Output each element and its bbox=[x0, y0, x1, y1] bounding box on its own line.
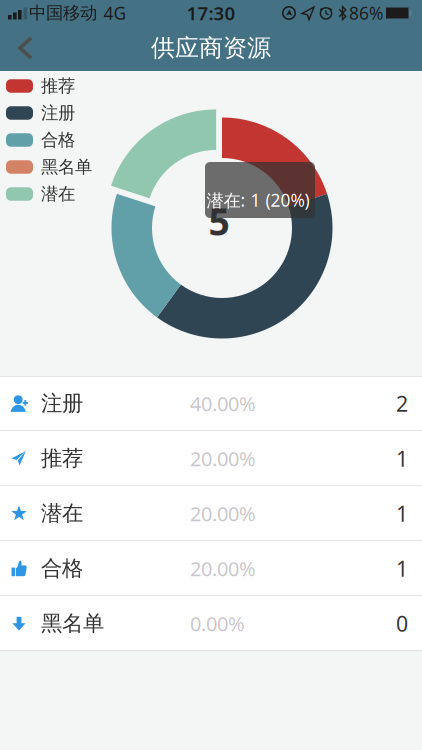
staticText: 20.00% bbox=[190, 555, 256, 582]
button[interactable]: 潜在 bbox=[0, 486, 422, 541]
staticText: 黑名单 bbox=[41, 156, 92, 178]
staticText: 供应商资源 bbox=[151, 33, 271, 63]
staticText: 合格 bbox=[41, 129, 75, 151]
staticText: 2 bbox=[396, 389, 408, 418]
staticText: 潜在: 1 (20%) bbox=[206, 188, 309, 211]
staticText: 黑名单 bbox=[41, 610, 104, 637]
button[interactable]: 注册 bbox=[0, 376, 422, 431]
staticText: 20.00% bbox=[190, 500, 256, 527]
button[interactable]: Back bbox=[0, 25, 52, 71]
button[interactable]: 合格 bbox=[0, 541, 422, 596]
staticText: 17:30 bbox=[186, 1, 235, 25]
staticText: 0.00% bbox=[190, 610, 245, 637]
staticText: 中国移动 bbox=[29, 2, 97, 24]
staticText: 40.00% bbox=[190, 390, 256, 417]
staticText: 合格 bbox=[41, 555, 83, 582]
staticText: 推荐 bbox=[41, 75, 75, 97]
staticText: 注册 bbox=[41, 102, 75, 124]
staticText: 潜在 bbox=[41, 183, 75, 205]
staticText: 1 bbox=[396, 554, 408, 583]
staticText: 潜在 bbox=[41, 500, 83, 527]
staticText: 5 bbox=[208, 196, 229, 246]
staticText: 1 bbox=[396, 499, 408, 528]
staticText: 4G bbox=[103, 1, 126, 24]
button[interactable]: 黑名单 bbox=[0, 596, 422, 651]
staticText: 1 bbox=[396, 444, 408, 473]
staticText: 86% bbox=[349, 1, 383, 24]
staticText: 推荐 bbox=[41, 445, 83, 472]
staticText: 注册 bbox=[41, 390, 83, 417]
button[interactable]: 推荐 bbox=[0, 431, 422, 486]
staticText: 0 bbox=[396, 609, 408, 638]
staticText: 20.00% bbox=[190, 445, 256, 472]
